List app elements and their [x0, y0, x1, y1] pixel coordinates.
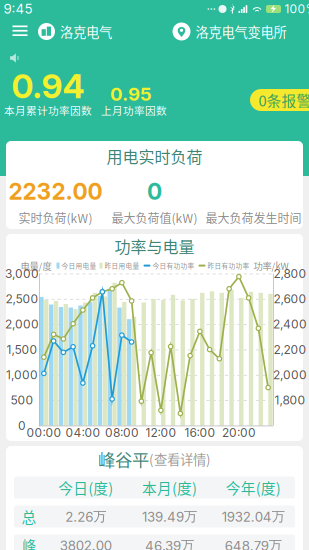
staticText: (查看详情): [149, 449, 211, 469]
staticText: 2,000: [273, 368, 307, 382]
staticText: 峰: [21, 535, 36, 550]
button[interactable]: 峰谷平: [98, 437, 211, 477]
staticText: 昨日有功功率: [207, 261, 249, 270]
staticText: 139.49万: [142, 508, 197, 525]
staticText: 今日(度): [58, 477, 113, 498]
staticText: 20:00: [222, 425, 256, 440]
staticText: 1,800: [274, 393, 305, 407]
staticText: 648.79万: [225, 537, 282, 550]
staticText: 功率/kW: [253, 259, 288, 272]
staticText: 0条报警: [258, 89, 309, 111]
staticText: 0: [147, 178, 162, 205]
staticText: 2,800: [273, 266, 306, 281]
staticText: 今年(度): [226, 477, 281, 498]
staticText: 2,200: [273, 342, 306, 357]
staticText: 0.95: [110, 83, 152, 105]
staticText: 峰谷平: [98, 446, 149, 472]
staticText: 2232.00: [8, 178, 102, 205]
staticText: 功率与电量: [114, 234, 194, 258]
staticText: 46.39万: [145, 537, 194, 550]
staticText: 2,500: [5, 292, 38, 306]
button[interactable]: 菜单: [6, 19, 33, 42]
staticText: 上月功率因数: [101, 102, 167, 118]
staticText: ···: [206, 2, 215, 16]
staticText: 500: [10, 393, 33, 407]
staticText: 16:00: [184, 425, 215, 440]
staticText: 实时负荷(kW): [18, 209, 92, 226]
staticText: 最大负荷发生时间: [205, 209, 301, 226]
staticText: 100%: [284, 2, 309, 16]
staticText: 总: [21, 506, 36, 527]
staticText: 04:00: [65, 425, 100, 440]
staticText: 用电实时负荷: [106, 144, 202, 168]
button[interactable]: 洛克电气变电所: [172, 18, 286, 45]
staticText: 12:00: [145, 425, 176, 440]
staticText: 今日有功功率: [152, 261, 194, 270]
staticText: 1,500: [6, 342, 37, 357]
staticText: 1,000: [6, 368, 38, 382]
staticText: 1,800: [274, 418, 305, 433]
staticText: 电量/度: [20, 259, 51, 272]
staticText: 3802.00: [60, 537, 112, 550]
staticText: 2,000: [5, 317, 39, 331]
staticText: 3,000: [5, 266, 39, 281]
staticText: 最大负荷值(kW): [111, 209, 197, 226]
staticText: 本月累计功率因数: [4, 102, 92, 118]
staticText: 0: [18, 418, 26, 433]
staticText: 9:45: [3, 1, 32, 17]
staticText: 洛克电气变电所: [195, 22, 286, 41]
staticText: 08:00: [105, 425, 139, 440]
staticText: 1932.04万: [222, 508, 285, 525]
button[interactable]: 洛克电气: [38, 18, 112, 45]
staticText: 0.94: [11, 66, 84, 106]
staticText: 今日用电量: [61, 261, 96, 270]
button[interactable]: 0条报警: [250, 89, 309, 111]
staticText: 2,600: [273, 292, 306, 306]
staticText: 本月(度): [142, 477, 197, 498]
staticText: 00:00: [26, 425, 61, 440]
staticText: 洛克电气: [60, 22, 112, 41]
staticText: 昨日用电量: [104, 261, 139, 270]
staticText: 2.26万: [65, 508, 106, 525]
staticText: 2,400: [273, 317, 307, 331]
